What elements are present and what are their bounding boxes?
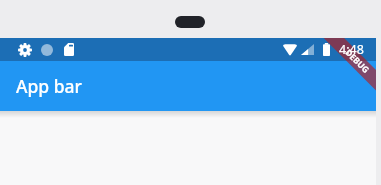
- staticText: App bar: [16, 74, 82, 98]
- staticText: 4:48: [339, 41, 364, 58]
- button[interactable]: App bar: [0, 61, 376, 111]
